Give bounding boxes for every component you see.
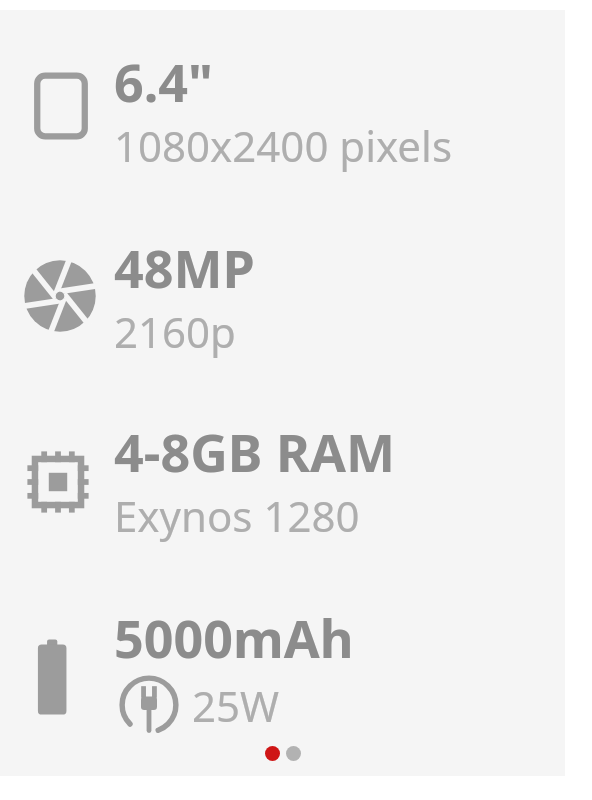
staticText: 1080x2400 pixels [114, 117, 453, 174]
button[interactable]: Memory and chipset [0, 416, 565, 594]
staticText: 25W [192, 677, 280, 734]
button[interactable]: Page 2 [286, 746, 301, 761]
button[interactable]: Battery capacity [0, 602, 565, 767]
other: Display size [28, 68, 94, 144]
staticText: 48MP [114, 232, 255, 303]
staticText: 4-8GB RAM [114, 416, 396, 487]
other: Camera resolution [22, 258, 98, 334]
staticText: Exynos 1280 [114, 487, 360, 544]
button[interactable]: Page 1 selected [265, 746, 280, 761]
other: Battery capacity [28, 630, 90, 720]
staticText: 2160p [114, 303, 236, 360]
other: Memory and chipset [22, 446, 94, 518]
button[interactable]: Camera resolution [0, 232, 565, 410]
staticText: 6.4" [114, 46, 214, 117]
button[interactable]: Display size [0, 46, 565, 224]
staticText: 5000mAh [114, 602, 354, 673]
other: Charging speed [114, 673, 184, 737]
